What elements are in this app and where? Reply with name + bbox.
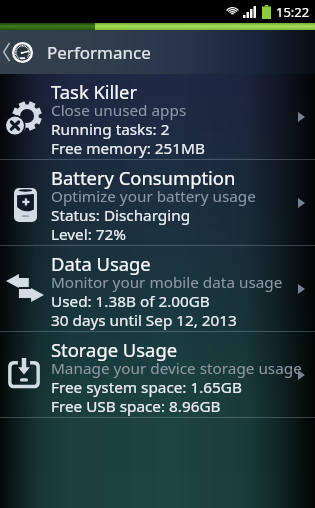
staticText: Monitor your mobile data usage [51,272,283,293]
staticText: Optimize your battery usage [51,186,256,207]
staticText: Level: 72% [51,224,126,245]
staticText: Task Killer [51,79,138,104]
staticText: Free system space: 1.65GB [51,377,242,398]
staticText: Free memory: 251MB [51,138,205,159]
staticText: 15:22 [276,3,310,21]
staticText: Performance [47,41,151,64]
button[interactable]: Navigate up [0,30,33,74]
staticText: Status: Discharging [51,205,191,226]
staticText: Storage Usage [51,337,178,362]
staticText: Running tasks: 2 [51,119,170,140]
staticText: Used: 1.38B of 2.00GB [51,291,210,312]
button[interactable]: Battery Consumption [0,160,315,245]
staticText: Manage your device storage usage [51,358,302,379]
staticText: Free USB space: 8.96GB [51,396,221,417]
button[interactable]: Data Usage [0,246,315,331]
staticText: 30 days until Sep 12, 2013 [51,310,237,331]
staticText: Data Usage [51,251,151,276]
staticText: Close unused apps [51,100,187,121]
button[interactable]: Task Killer [0,74,315,159]
button[interactable]: Storage Usage [0,332,315,417]
staticText: Battery Consumption [51,165,236,190]
